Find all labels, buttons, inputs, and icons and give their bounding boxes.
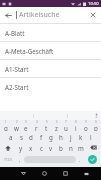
staticText: a [9, 133, 13, 141]
button[interactable]: Suchen [84, 154, 101, 165]
button[interactable]: Startbildschirm [34, 167, 55, 180]
button[interactable]: 0 [91, 120, 101, 131]
staticText: b [59, 144, 63, 152]
button[interactable]: Rücktaste [86, 142, 101, 153]
staticText: q [4, 124, 8, 131]
button[interactable]: a [6, 131, 16, 142]
button[interactable]: Zurück [0, 7, 16, 23]
button[interactable]: A-Meta-Geschäft [0, 42, 101, 59]
staticText: t [45, 124, 48, 131]
staticText: o [84, 124, 88, 131]
button[interactable]: Übersicht [55, 167, 76, 180]
button[interactable]: 9 [81, 120, 91, 131]
button[interactable]: 8 [71, 120, 81, 131]
button[interactable]: 2 [11, 120, 21, 131]
button[interactable]: m [76, 142, 86, 153]
staticText: x [29, 144, 33, 152]
staticText: f [40, 133, 43, 141]
button[interactable]: A2-Start [0, 78, 101, 95]
staticText: 8 [75, 120, 77, 124]
staticText: , [19, 156, 21, 163]
button[interactable]: f [36, 131, 46, 142]
button[interactable]: A1-Start [0, 60, 101, 77]
button[interactable]: Tastatur schließen [13, 167, 34, 180]
button[interactable]: Tastatur wechseln [76, 167, 97, 180]
button[interactable]: 3 [21, 120, 31, 131]
staticText: l [90, 133, 92, 141]
button[interactable]: x [26, 142, 36, 153]
staticText: A-Blatt [5, 29, 25, 37]
staticText: A-Meta-Geschäft [5, 47, 54, 55]
button[interactable]: c [36, 142, 46, 153]
staticText: n [69, 144, 73, 152]
button[interactable]: 5 [41, 120, 51, 131]
button[interactable]: 6 [51, 120, 61, 131]
button[interactable]: s [16, 131, 26, 142]
staticText: 1 [5, 120, 7, 124]
staticText: 7 [65, 120, 67, 124]
staticText: z [55, 124, 58, 131]
staticText: A1-Start [5, 65, 29, 73]
button[interactable]: v [46, 142, 56, 153]
staticText: c [40, 144, 43, 152]
button[interactable]: n [66, 142, 76, 153]
staticText: w [14, 124, 19, 131]
staticText: s [20, 133, 23, 141]
staticText: j [70, 133, 72, 141]
button[interactable]: Spracheingabe [92, 111, 101, 120]
staticText: u [64, 124, 68, 131]
staticText: k [79, 133, 83, 141]
staticText: r [35, 124, 38, 131]
staticText: e [24, 124, 28, 131]
staticText: y [19, 144, 23, 152]
staticText: h [59, 133, 63, 141]
button[interactable]: Löschen [85, 7, 101, 23]
button[interactable]: k [76, 131, 86, 142]
button[interactable]: l [86, 131, 96, 142]
staticText: d [29, 133, 33, 141]
button[interactable]: 7 [61, 120, 71, 131]
button[interactable]: A-Blatt [0, 24, 101, 41]
staticText: 3 [25, 120, 27, 124]
button[interactable]: . [76, 154, 84, 165]
button[interactable]: y [16, 142, 26, 153]
staticText: 10:50 [88, 1, 99, 7]
button[interactable]: d [26, 131, 36, 142]
staticText: 6 [56, 120, 58, 124]
staticText: . [79, 156, 81, 163]
button[interactable]: j [66, 131, 76, 142]
staticText: 2 [16, 120, 18, 124]
staticText: i [75, 124, 77, 131]
staticText: m [78, 144, 84, 152]
button[interactable]: 1 [0, 120, 11, 131]
button[interactable]: h [56, 131, 66, 142]
staticText: 4 [36, 120, 38, 124]
staticText: A2-Start [5, 83, 29, 91]
staticText: Artikelsuche [19, 10, 85, 20]
button[interactable]: , [16, 154, 24, 165]
button[interactable]: g [46, 131, 56, 142]
staticText: v [49, 144, 53, 152]
staticText: ?123 [4, 157, 12, 162]
staticText: 9 [85, 120, 87, 124]
button[interactable]: 4 [31, 120, 41, 131]
staticText: g [49, 133, 53, 141]
button[interactable]: Umschalt [0, 142, 16, 153]
staticText: p [94, 124, 98, 131]
button[interactable]: b [56, 142, 66, 153]
button[interactable]: ?123 [0, 154, 16, 165]
staticText: 5 [46, 120, 48, 124]
staticText: 0 [95, 120, 97, 124]
